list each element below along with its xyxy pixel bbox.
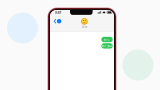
staticText: 9:41 — [55, 10, 62, 15]
button[interactable]: Back — [52, 17, 63, 25]
staticText: 🙂 — [81, 18, 88, 24]
staticText: Alex — [82, 25, 87, 29]
staticText: Sure! — [103, 38, 110, 41]
staticText: See you — [101, 44, 112, 48]
